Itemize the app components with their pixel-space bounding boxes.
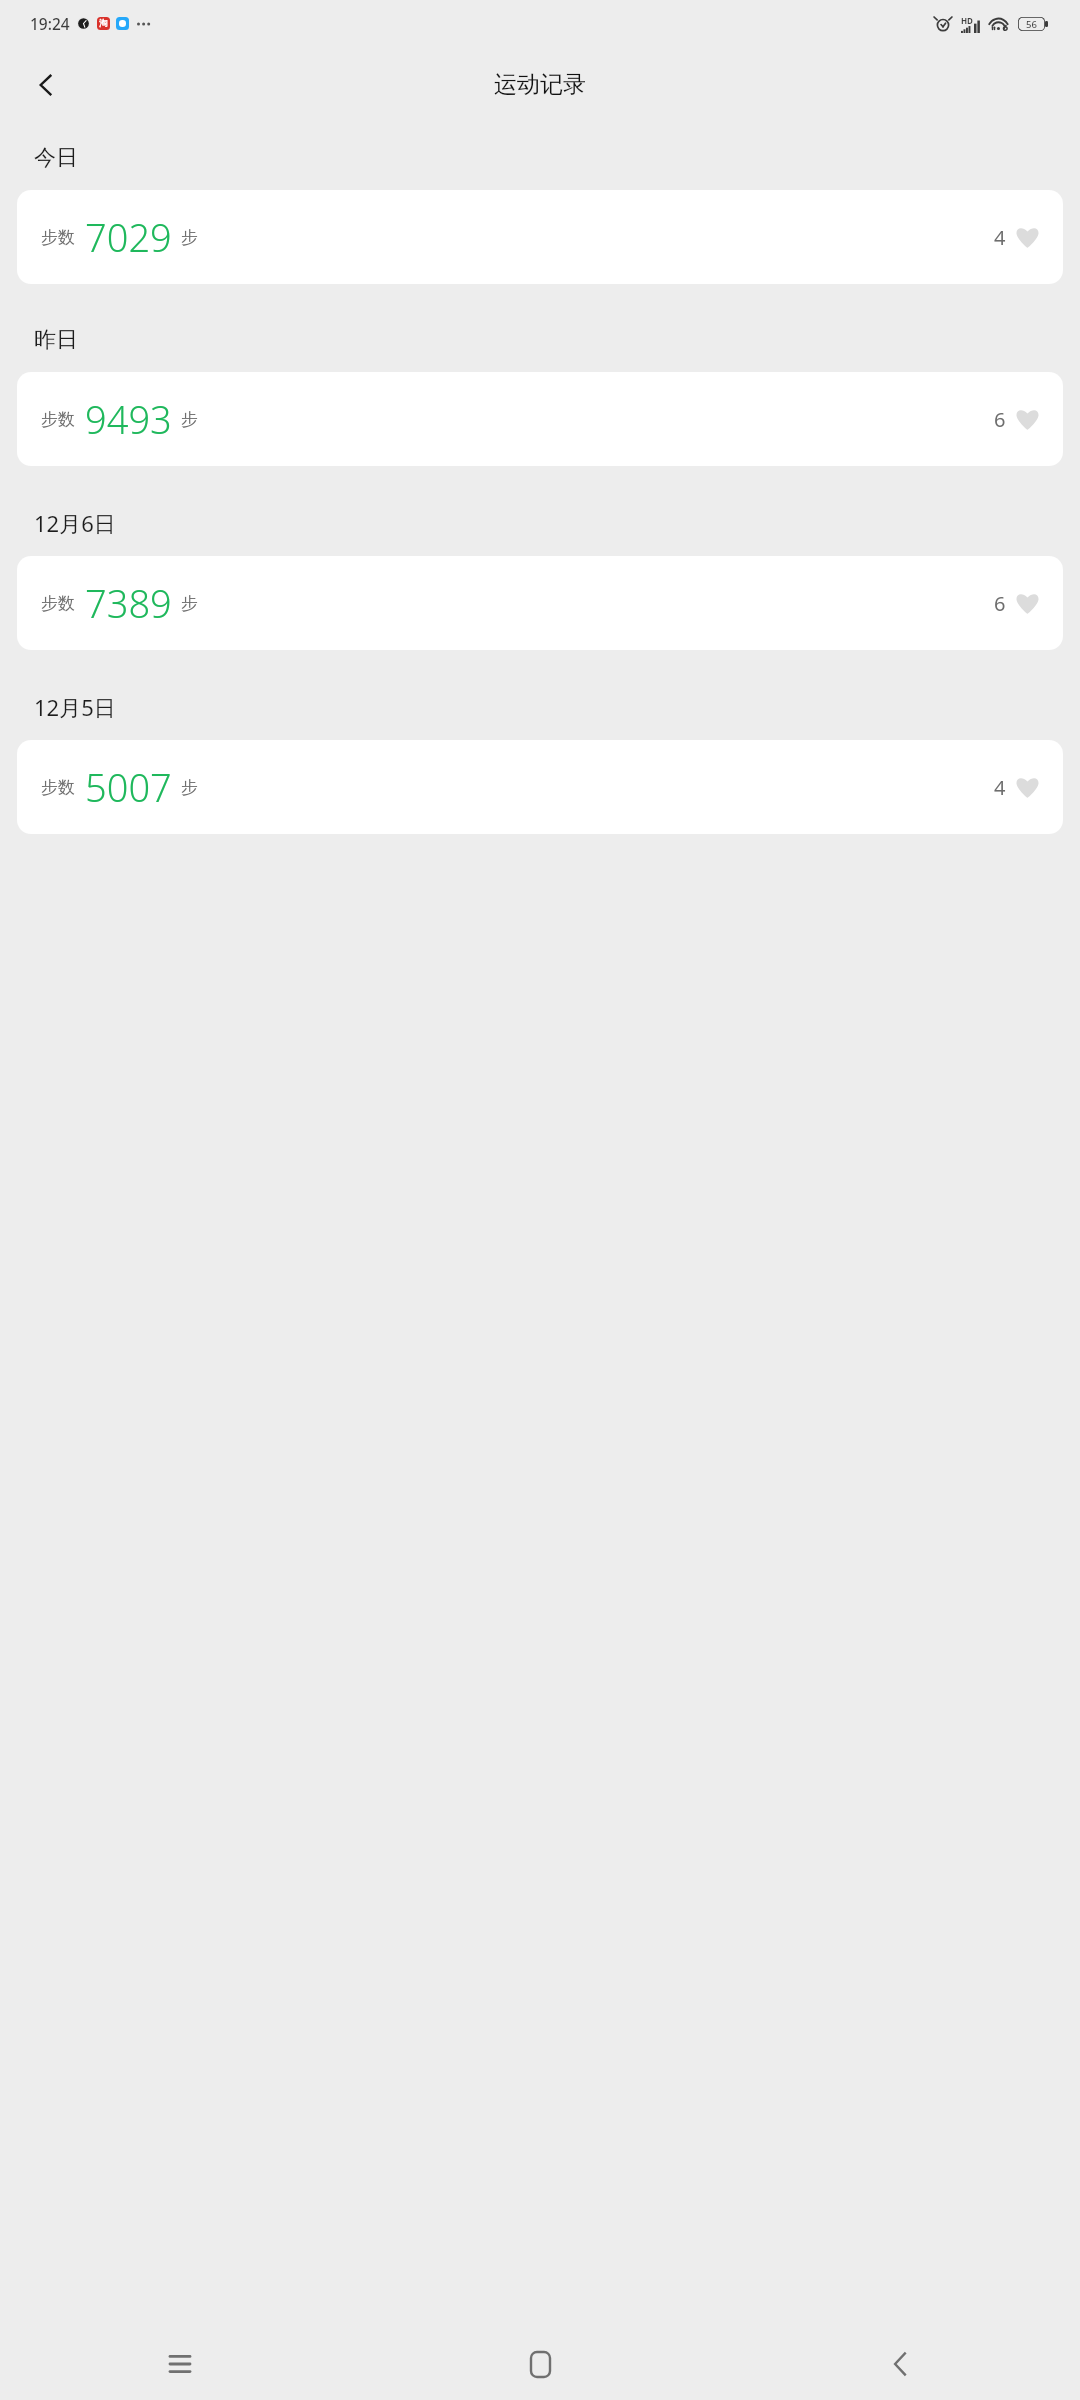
staticText: 12月6日 xyxy=(34,508,116,538)
staticText: 9493 xyxy=(85,393,172,445)
staticText: 昨日 xyxy=(34,326,78,354)
staticText: 4 xyxy=(994,224,1006,251)
staticText: 步 xyxy=(181,593,198,614)
staticText: 今日 xyxy=(34,144,78,172)
staticText: 步 xyxy=(181,409,198,430)
staticText: 6 xyxy=(994,590,1006,617)
button[interactable]: 步数 xyxy=(17,740,1063,834)
button[interactable]: 步数 xyxy=(17,190,1063,284)
staticText: 步数 xyxy=(41,227,75,248)
button[interactable]: Back xyxy=(18,57,74,113)
staticText: 步数 xyxy=(41,593,75,614)
staticText: HD xyxy=(961,15,973,26)
button[interactable]: 步数 xyxy=(17,556,1063,650)
staticText: 7389 xyxy=(85,577,172,629)
staticText: 7029 xyxy=(85,211,172,263)
staticText: 步 xyxy=(181,777,198,798)
staticText: 6 xyxy=(994,406,1006,433)
staticText: 步数 xyxy=(41,777,75,798)
staticText: 5007 xyxy=(85,761,172,813)
staticText: 步数 xyxy=(41,409,75,430)
staticText: 56 xyxy=(1026,18,1037,31)
staticText: 12月5日 xyxy=(34,692,116,722)
button[interactable]: Back xyxy=(720,2328,1080,2400)
staticText: 淘 xyxy=(99,18,108,29)
staticText: 19:24 xyxy=(30,13,70,34)
staticText: 4 xyxy=(994,774,1006,801)
staticText: 运动记录 xyxy=(494,70,586,99)
button[interactable]: Recent apps xyxy=(0,2328,360,2400)
button[interactable]: Home xyxy=(360,2328,720,2400)
staticText: 步 xyxy=(181,227,198,248)
button[interactable]: 步数 xyxy=(17,372,1063,466)
